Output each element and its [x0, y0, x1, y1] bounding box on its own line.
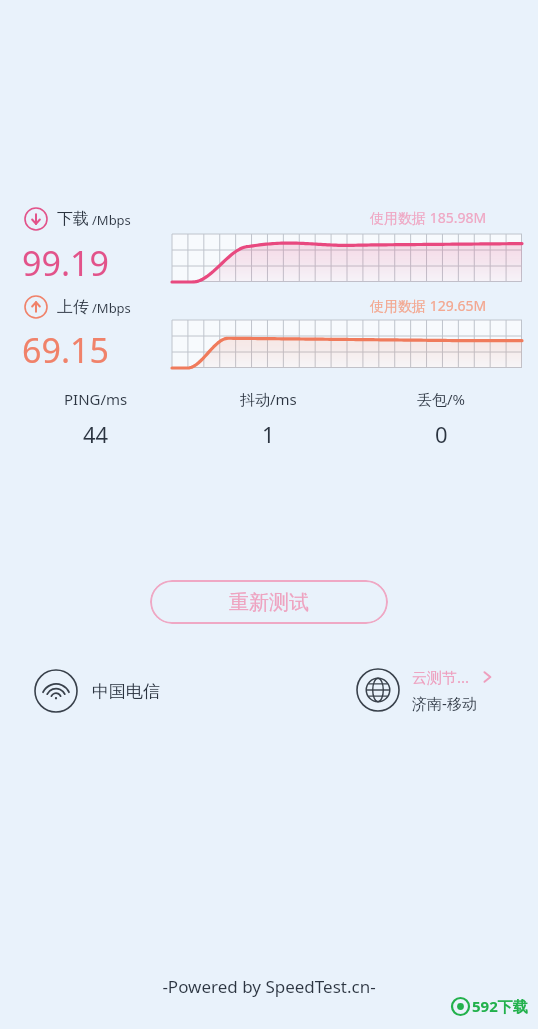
staticText: 592下载 — [472, 996, 528, 1016]
other: Test node — [354, 666, 402, 714]
button[interactable]: 丢包/% — [355, 389, 528, 449]
button[interactable]: 重新测试 — [150, 580, 388, 624]
staticText: /Mbps — [92, 299, 131, 317]
staticText: 1 — [262, 419, 275, 449]
staticText: 云测节... — [412, 667, 470, 687]
staticText: 济南-移动 — [412, 693, 477, 713]
staticText: PING/ms — [64, 389, 128, 409]
staticText: 上传 — [57, 297, 89, 317]
button[interactable]: 抖动/ms — [182, 389, 355, 449]
staticText: 中国电信 — [92, 681, 160, 702]
staticText: 丢包/% — [417, 389, 466, 409]
staticText: 44 — [83, 419, 109, 449]
button[interactable]: Network carrier — [32, 667, 160, 715]
button[interactable]: Test node — [354, 666, 494, 714]
staticText: 下载 — [57, 209, 89, 229]
staticText: 重新测试 — [229, 590, 309, 615]
staticText: 使用数据 185.98M — [370, 208, 487, 227]
staticText: 抖动/ms — [240, 389, 297, 409]
staticText: -Powered by SpeedTest.cn- — [162, 975, 376, 998]
staticText: 0 — [435, 419, 448, 449]
staticText: 使用数据 129.65M — [370, 296, 487, 315]
staticText: 69.15 — [22, 327, 109, 373]
other: Network carrier — [32, 667, 80, 715]
button[interactable]: PING/ms — [10, 389, 182, 449]
staticText: /Mbps — [92, 211, 131, 229]
staticText: 99.19 — [22, 240, 109, 286]
